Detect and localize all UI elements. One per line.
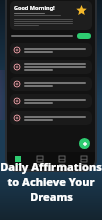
- button[interactable]: Profile: [73, 152, 95, 169]
- button[interactable]: Explore: [29, 152, 51, 169]
- button[interactable]: Home: [7, 152, 29, 169]
- button[interactable]: Favorite star: [76, 5, 87, 16]
- button[interactable]: [10, 111, 92, 125]
- staticText: Dreams: [30, 189, 73, 204]
- button[interactable]: [10, 77, 92, 91]
- button[interactable]: Good Morning!: [10, 1, 92, 30]
- staticText: Daily Affirmations: [0, 159, 102, 174]
- button[interactable]: Add affirmation: [79, 138, 90, 149]
- button[interactable]: [10, 43, 92, 57]
- button[interactable]: Library: [51, 152, 73, 169]
- button[interactable]: [77, 33, 91, 39]
- staticText: Good Morning!: [14, 4, 55, 11]
- button[interactable]: [10, 94, 92, 108]
- button[interactable]: [10, 60, 92, 74]
- staticText: to Achieve Your: [7, 174, 95, 189]
